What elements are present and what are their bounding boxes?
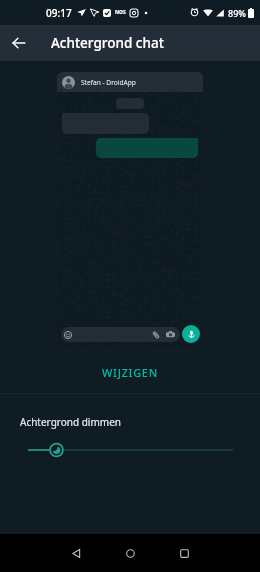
staticText: 89% — [228, 7, 246, 19]
button[interactable]: Recents — [157, 534, 211, 572]
staticText: Achtergrond dimmen — [20, 415, 121, 429]
staticText: Achtergrond chat — [51, 34, 164, 52]
staticText: Stefan - DroidApp — [81, 78, 136, 87]
staticText: WIJZIGEN — [102, 365, 158, 380]
button[interactable]: Back — [0, 25, 38, 61]
staticText: 09:17 — [46, 6, 72, 20]
button[interactable]: Home — [103, 534, 157, 572]
staticText: NOS — [115, 9, 126, 16]
button[interactable]: Back — [49, 534, 103, 572]
button[interactable]: WIJZIGEN — [0, 358, 260, 386]
button[interactable]: Dim slider — [0, 439, 260, 461]
